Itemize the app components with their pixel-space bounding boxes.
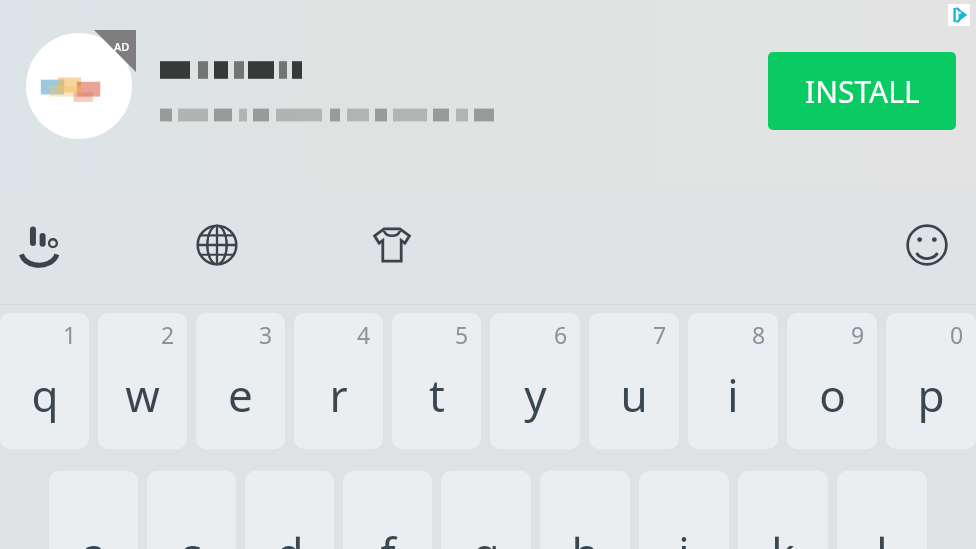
staticText: l bbox=[876, 523, 888, 549]
button[interactable]: 1 bbox=[0, 313, 89, 449]
button[interactable]: a bbox=[49, 471, 138, 549]
staticText: i bbox=[727, 365, 739, 425]
staticText: g bbox=[472, 523, 500, 549]
button[interactable]: 5 bbox=[392, 313, 481, 449]
staticText: u bbox=[620, 365, 648, 425]
button[interactable]: d bbox=[245, 471, 334, 549]
staticText: d bbox=[276, 523, 304, 549]
button[interactable]: j bbox=[639, 471, 729, 549]
staticText: r bbox=[329, 365, 348, 425]
staticText: a bbox=[81, 523, 106, 549]
staticText: s bbox=[181, 523, 203, 549]
button[interactable]: k bbox=[738, 471, 828, 549]
staticText: 8 bbox=[752, 319, 766, 350]
staticText: 4 bbox=[357, 319, 371, 350]
staticText: e bbox=[228, 365, 253, 425]
button[interactable]: 8 bbox=[688, 313, 778, 449]
button[interactable]: 7 bbox=[589, 313, 679, 449]
staticText: AD bbox=[114, 39, 130, 54]
staticText: 9 bbox=[851, 319, 865, 350]
staticText: 2 bbox=[161, 319, 175, 350]
staticText: 5 bbox=[455, 319, 469, 350]
button[interactable]: Ad choices bbox=[0, 0, 976, 185]
button[interactable]: 9 bbox=[787, 313, 877, 449]
button[interactable]: g bbox=[441, 471, 531, 549]
staticText: 6 bbox=[554, 319, 568, 350]
button[interactable]: TouchPal menu bbox=[14, 218, 68, 272]
button[interactable]: 6 bbox=[490, 313, 580, 449]
button[interactable]: Themes bbox=[365, 218, 419, 272]
button[interactable]: s bbox=[147, 471, 236, 549]
staticText: j bbox=[678, 523, 690, 549]
staticText: 0 bbox=[950, 319, 964, 350]
staticText: w bbox=[125, 365, 160, 425]
staticText: h bbox=[571, 523, 599, 549]
staticText: y bbox=[524, 365, 547, 425]
button[interactable]: 2 bbox=[98, 313, 187, 449]
button[interactable]: Language bbox=[190, 218, 244, 272]
button[interactable]: INSTALL bbox=[768, 52, 956, 130]
button[interactable]: h bbox=[540, 471, 630, 549]
button[interactable]: 3 bbox=[196, 313, 285, 449]
staticText: o bbox=[819, 365, 846, 425]
staticText: INSTALL bbox=[805, 71, 920, 112]
staticText: p bbox=[917, 365, 945, 425]
button[interactable]: 0 bbox=[886, 313, 976, 449]
staticText: 1 bbox=[63, 319, 77, 350]
button[interactable]: f bbox=[343, 471, 432, 549]
staticText: 3 bbox=[259, 319, 273, 350]
staticText: t bbox=[429, 365, 445, 425]
button[interactable]: 4 bbox=[294, 313, 383, 449]
button[interactable]: l bbox=[837, 471, 927, 549]
staticText: 7 bbox=[653, 319, 667, 350]
staticText: f bbox=[380, 523, 396, 549]
staticText: k bbox=[771, 523, 795, 549]
button[interactable]: Ad choices bbox=[948, 4, 970, 26]
staticText: q bbox=[31, 365, 59, 425]
button[interactable]: Emoji bbox=[900, 218, 954, 272]
